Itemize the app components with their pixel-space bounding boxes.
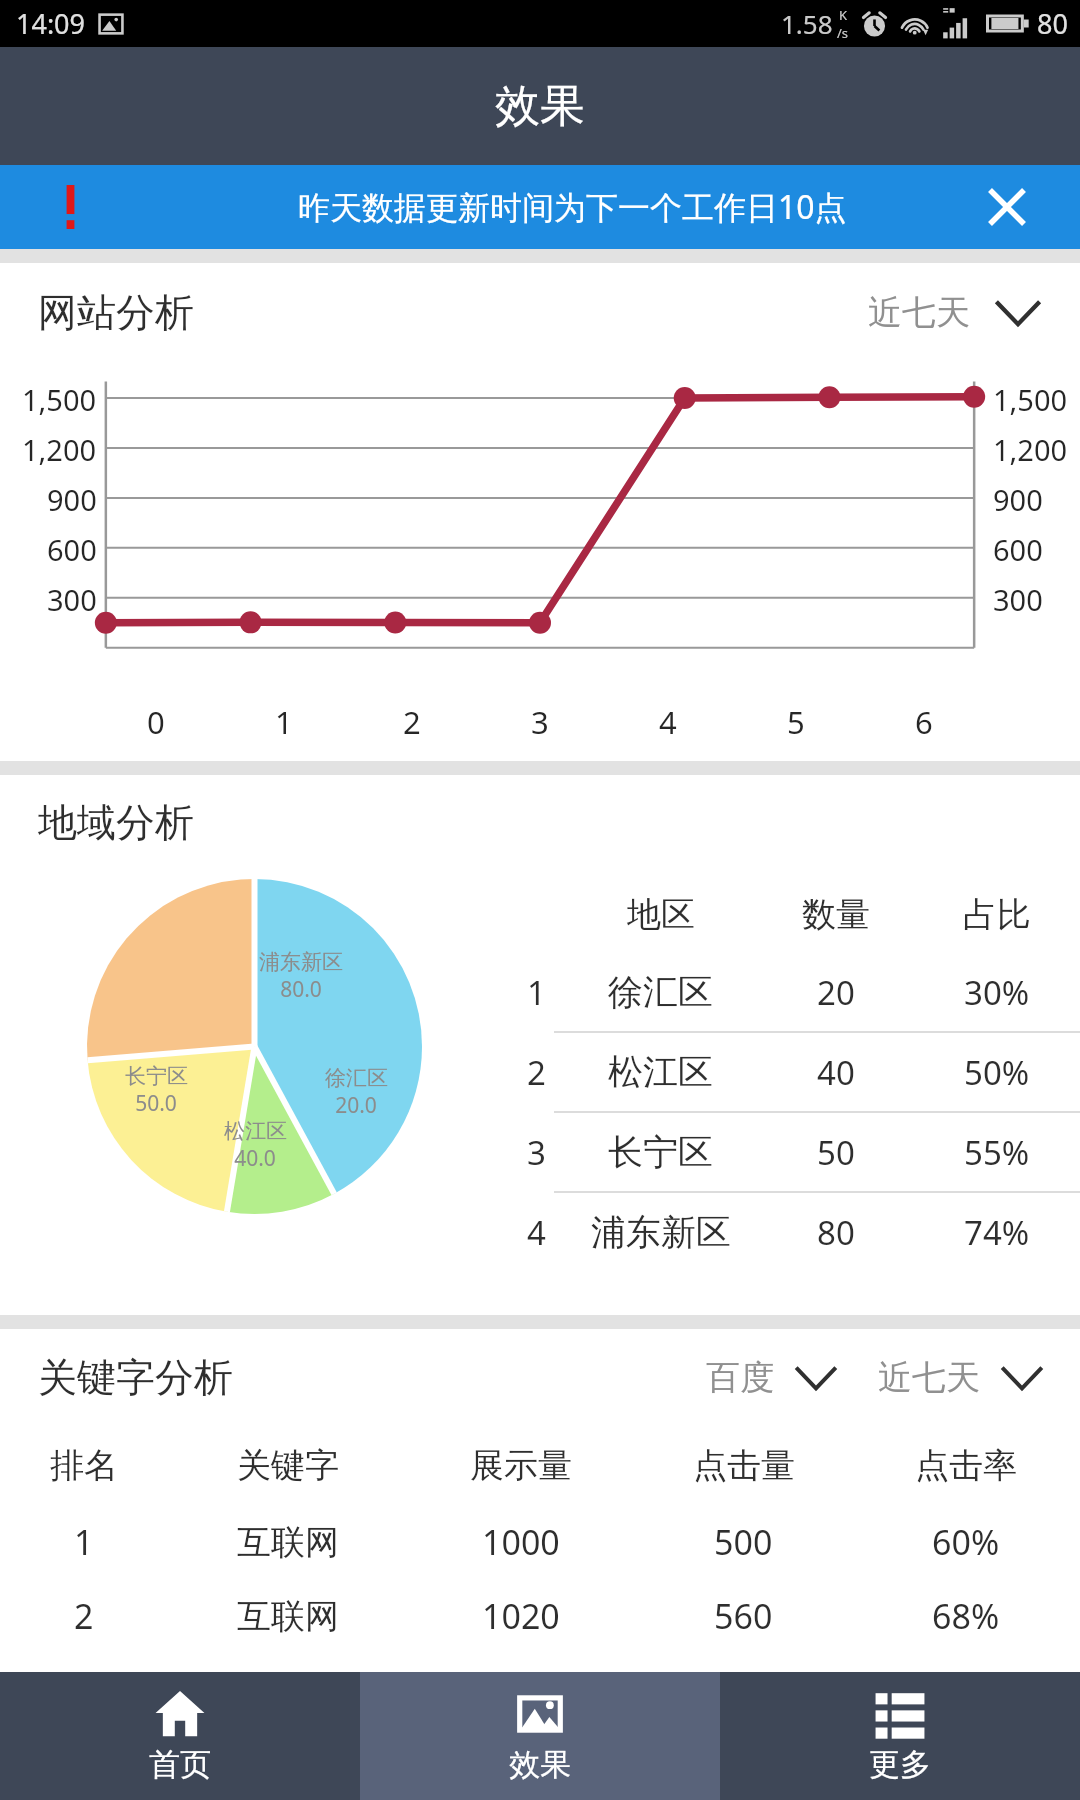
staticText: 百度: [706, 1356, 774, 1399]
staticText: 互联网: [237, 1521, 339, 1564]
staticText: 3: [527, 1130, 546, 1175]
staticText: 6: [915, 701, 933, 743]
staticText: 2: [403, 701, 421, 743]
staticText: 80: [1037, 5, 1068, 42]
staticText: 1000: [482, 1519, 560, 1565]
staticText: 74%: [964, 1210, 1030, 1255]
staticText: 1,200: [993, 430, 1068, 469]
staticText: 地区: [627, 893, 695, 936]
staticText: 1: [74, 1519, 94, 1565]
staticText: 5: [787, 701, 805, 743]
button[interactable]: 3: [508, 1113, 1080, 1191]
staticText: 效果: [509, 1745, 571, 1784]
staticText: 浦东新区: [591, 1210, 731, 1254]
staticText: 互联网: [237, 1595, 339, 1638]
staticText: 网站分析: [38, 288, 194, 337]
staticText: 展示量: [470, 1444, 572, 1487]
staticText: 数量: [802, 893, 870, 936]
staticText: 3: [531, 701, 549, 743]
staticText: 占比: [963, 893, 1031, 936]
staticText: 关键字: [237, 1444, 339, 1487]
staticText: 地域分析: [38, 798, 194, 847]
button[interactable]: 1: [0, 1505, 1080, 1579]
staticText: 昨天数据更新时间为下一个工作日10点: [298, 185, 847, 229]
staticText: 1,200: [22, 430, 97, 469]
button[interactable]: 近七天: [872, 1350, 1050, 1405]
staticText: 80.0: [280, 975, 322, 1004]
button[interactable]: 2: [0, 1579, 1080, 1653]
staticText: 2: [74, 1593, 94, 1639]
staticText: 600: [47, 530, 97, 569]
staticText: 14:09: [16, 5, 86, 42]
staticText: 900: [993, 480, 1043, 519]
staticText: 1,500: [22, 380, 97, 419]
staticText: 2: [527, 1050, 546, 1095]
staticText: 首页: [149, 1745, 211, 1784]
staticText: 30%: [964, 970, 1030, 1015]
button[interactable]: 首页: [0, 1672, 360, 1800]
staticText: 68%: [932, 1593, 1000, 1639]
staticText: 4: [527, 1210, 546, 1255]
staticText: 近七天: [878, 1356, 980, 1399]
staticText: 300: [47, 580, 97, 619]
staticText: 300: [993, 580, 1043, 619]
staticText: 20.0: [335, 1091, 377, 1120]
staticText: 600: [993, 530, 1043, 569]
button[interactable]: 1: [508, 953, 1080, 1031]
staticText: 50%: [964, 1050, 1030, 1095]
staticText: 松江区: [608, 1050, 713, 1094]
staticText: 55%: [964, 1130, 1030, 1175]
button[interactable]: 关闭: [972, 172, 1042, 242]
staticText: 900: [47, 480, 97, 519]
staticText: 松江区: [224, 1118, 287, 1144]
staticText: 4: [659, 701, 677, 743]
staticText: 近七天: [868, 291, 970, 334]
staticText: 40: [817, 1050, 855, 1095]
staticText: /s: [837, 24, 849, 42]
staticText: 500: [714, 1519, 773, 1565]
staticText: 0: [147, 701, 165, 743]
button[interactable]: 近七天: [860, 283, 1050, 342]
staticText: 1: [275, 701, 293, 743]
staticText: 更多: [869, 1745, 931, 1784]
staticText: 排名: [50, 1444, 118, 1487]
staticText: 560: [714, 1593, 773, 1639]
staticText: 效果: [495, 78, 585, 135]
staticText: 徐汇区: [608, 970, 713, 1014]
staticText: 1.58: [781, 6, 833, 41]
staticText: 40.0: [234, 1144, 276, 1173]
staticText: 60%: [932, 1519, 1000, 1565]
button[interactable]: 效果: [360, 1672, 720, 1800]
staticText: 点击率: [915, 1444, 1017, 1487]
button[interactable]: 4: [508, 1193, 1080, 1271]
staticText: 徐汇区: [325, 1065, 388, 1091]
staticText: 点击量: [693, 1444, 795, 1487]
staticText: 1,500: [993, 380, 1068, 419]
staticText: 关键字分析: [38, 1353, 233, 1402]
button[interactable]: 更多: [720, 1672, 1080, 1800]
staticText: 80: [817, 1210, 855, 1255]
staticText: 20: [817, 970, 855, 1015]
staticText: K: [839, 6, 848, 24]
staticText: 50: [817, 1130, 855, 1175]
staticText: 1: [527, 970, 546, 1015]
staticText: 浦东新区: [259, 949, 343, 975]
staticText: 长宁区: [608, 1130, 713, 1174]
button[interactable]: 2: [508, 1033, 1080, 1111]
staticText: 1020: [482, 1593, 560, 1639]
staticText: 长宁区: [125, 1063, 188, 1089]
button[interactable]: 百度: [700, 1350, 844, 1405]
staticText: 50.0: [135, 1089, 177, 1118]
